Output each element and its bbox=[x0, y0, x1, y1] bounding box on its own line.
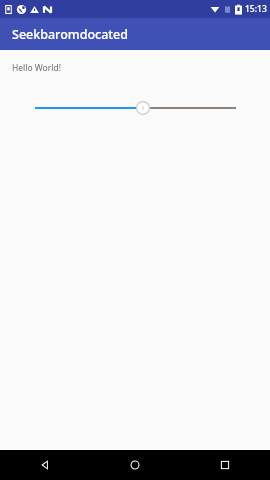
staticText: Seekbaromdocated bbox=[12, 26, 129, 43]
button[interactable]: Recent apps bbox=[180, 450, 270, 480]
button[interactable]: Back bbox=[0, 450, 90, 480]
staticText: Hello World! bbox=[12, 62, 61, 74]
staticText: 15:13 bbox=[245, 3, 267, 15]
button[interactable]: Seek bar bbox=[0, 96, 270, 120]
button[interactable]: Home bbox=[90, 450, 180, 480]
